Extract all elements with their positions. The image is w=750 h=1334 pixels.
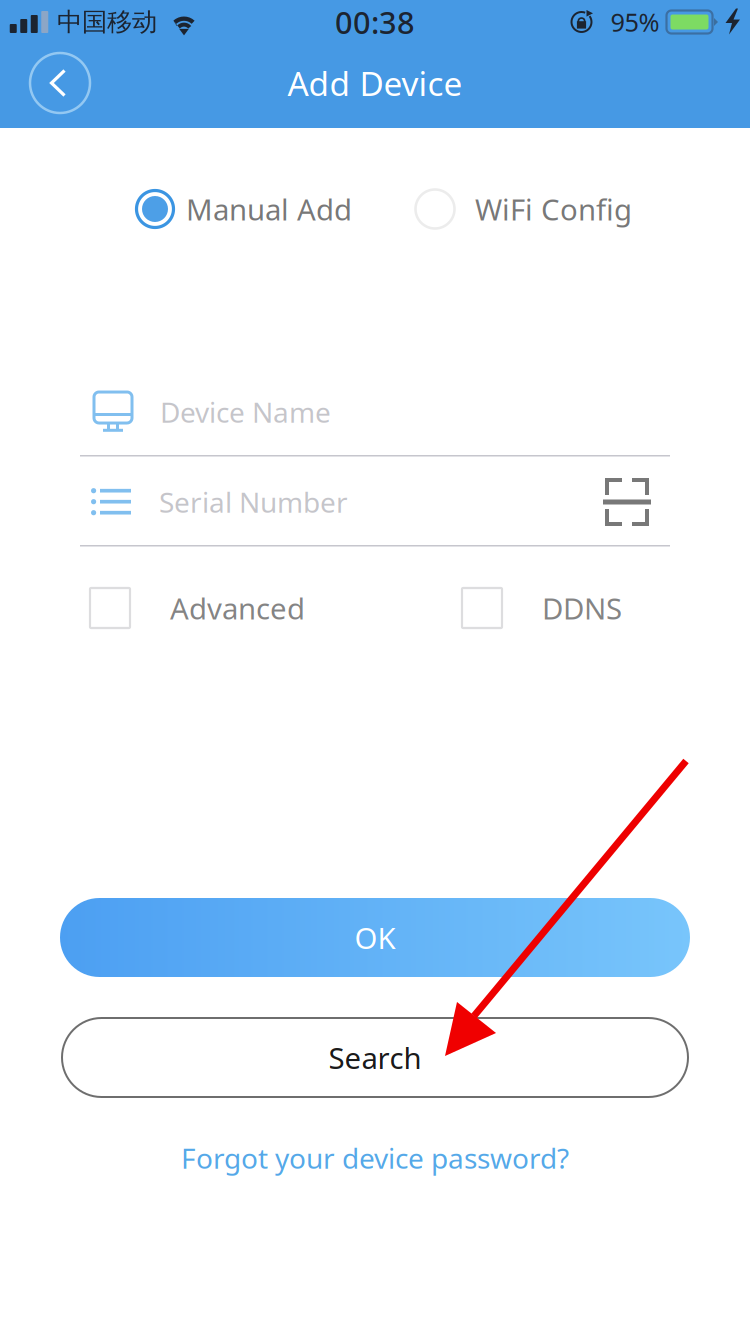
- staticText: DDNS: [542, 588, 622, 627]
- button[interactable]: Forgot your device password?: [0, 1133, 750, 1183]
- button[interactable]: WiFi Config: [413, 180, 632, 238]
- staticText: 中国移动: [57, 6, 157, 37]
- staticText: OK: [354, 918, 395, 957]
- button[interactable]: DDNS: [462, 579, 622, 637]
- staticText: Device Name: [160, 393, 331, 431]
- staticText: Advanced: [170, 588, 305, 627]
- staticText: 00:38: [335, 2, 415, 42]
- staticText: 95%: [610, 5, 659, 39]
- button[interactable]: OK: [60, 898, 690, 977]
- staticText: Manual Add: [186, 189, 352, 228]
- staticText: Forgot your device password?: [181, 1139, 569, 1177]
- staticText: Add Device: [287, 61, 462, 105]
- staticText: WiFi Config: [475, 189, 632, 228]
- button[interactable]: Search: [62, 1018, 688, 1097]
- button[interactable]: Scan QR code: [593, 468, 661, 536]
- staticText: Search: [328, 1038, 421, 1077]
- button[interactable]: Manual Add: [133, 180, 352, 238]
- button[interactable]: Back: [16, 43, 104, 123]
- staticText: Serial Number: [159, 483, 348, 521]
- button[interactable]: Advanced: [90, 579, 305, 637]
